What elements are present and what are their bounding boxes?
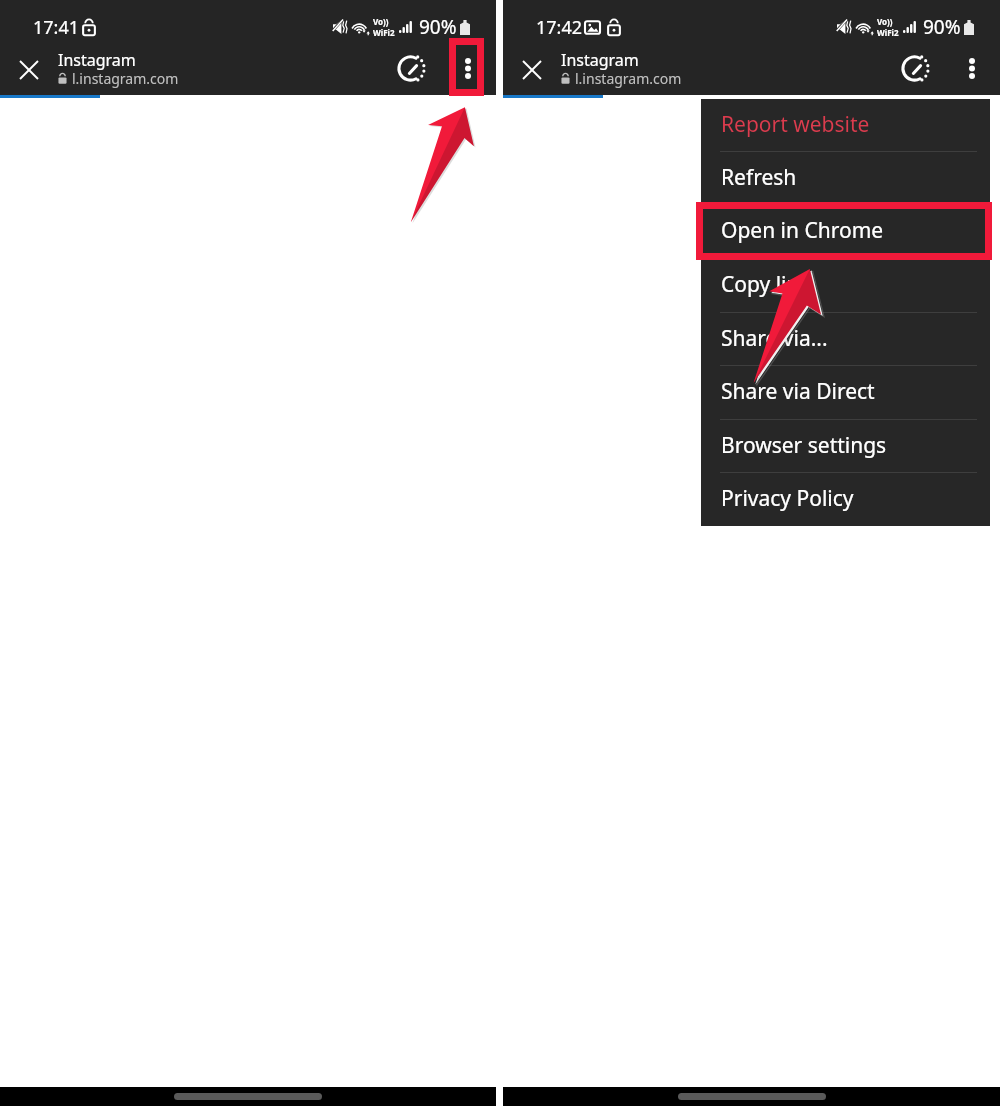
button[interactable]: More options (950, 48, 994, 89)
button[interactable]: Copy link (701, 258, 990, 312)
button[interactable]: Refresh (701, 151, 990, 205)
staticText: Instagram (561, 49, 639, 71)
button[interactable]: Stop loading (892, 48, 936, 89)
button[interactable]: Open in Chrome (701, 204, 990, 258)
staticText: Vo)) (877, 16, 893, 27)
button[interactable]: Stop loading (388, 48, 432, 89)
staticText: Privacy Policy (721, 484, 854, 513)
staticText: Open in Chrome (721, 216, 884, 245)
button[interactable]: Share via... (701, 312, 990, 366)
button[interactable]: Close (7, 49, 51, 90)
staticText: WiFi2 (373, 27, 395, 38)
staticText: Share via... (721, 324, 828, 353)
staticText: 17:42 (536, 15, 583, 40)
staticText: 90% (419, 14, 457, 40)
staticText: 17:41 (33, 15, 80, 40)
button[interactable]: Report website (701, 99, 990, 151)
staticText: Share via Direct (721, 377, 875, 406)
staticText: Browser settings (721, 431, 887, 460)
button[interactable]: Browser settings (701, 419, 990, 473)
staticText: l.instagram.com (72, 69, 179, 88)
staticText: l.instagram.com (575, 69, 682, 88)
staticText: WiFi2 (877, 27, 899, 38)
staticText: Instagram (58, 49, 136, 71)
button[interactable]: More options (446, 48, 490, 89)
staticText: Refresh (721, 163, 797, 192)
button[interactable]: Close (510, 49, 554, 90)
staticText: 90% (923, 14, 961, 40)
button[interactable]: Privacy Policy (701, 472, 990, 526)
staticText: Vo)) (373, 16, 389, 27)
button[interactable]: Share via Direct (701, 365, 990, 419)
staticText: Copy link (721, 270, 811, 299)
staticText: Report website (721, 110, 870, 139)
